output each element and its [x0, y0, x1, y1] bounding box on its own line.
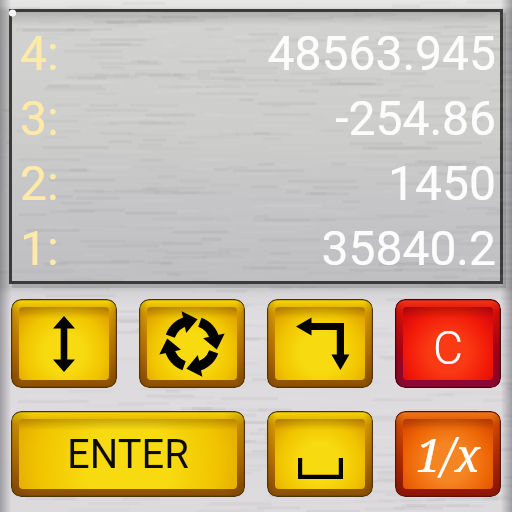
staticText: 1:	[20, 220, 59, 276]
staticText: -254.86	[59, 90, 496, 146]
staticText: 1450	[59, 155, 496, 211]
button[interactable]: Space	[267, 411, 373, 497]
staticText: 48563.945	[59, 25, 496, 81]
button[interactable]: Roll	[139, 299, 245, 388]
staticText: ENTER	[67, 431, 189, 478]
staticText: 1/x	[416, 423, 481, 486]
button[interactable]: ENTER	[11, 411, 245, 497]
staticText: C	[433, 321, 463, 375]
button[interactable]: Swap	[11, 299, 117, 388]
staticText: 3:	[20, 90, 59, 146]
staticText: 2:	[20, 155, 59, 211]
button[interactable]: 1/x	[395, 411, 501, 497]
button[interactable]: C	[395, 299, 501, 388]
staticText: 4:	[20, 25, 59, 81]
staticText: 35840.2	[59, 220, 496, 276]
button[interactable]: Drop	[267, 299, 373, 388]
